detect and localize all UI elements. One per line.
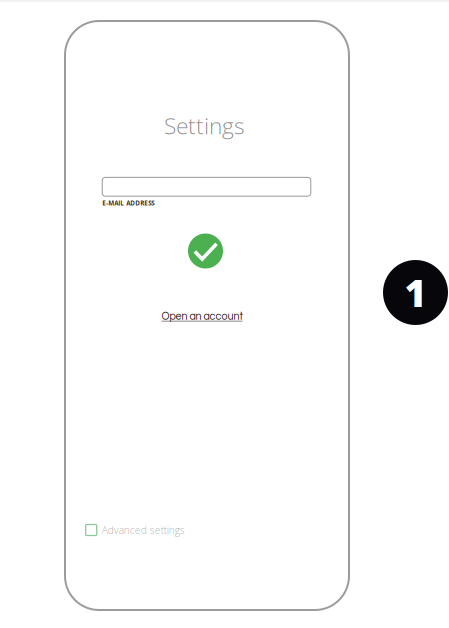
- staticText: Settings: [164, 110, 245, 141]
- button[interactable]: Advanced settings: [86, 523, 185, 537]
- staticText: 1: [404, 267, 426, 318]
- staticText: E-MAIL ADDRESS: [102, 199, 154, 207]
- button[interactable]: Open an account: [161, 311, 242, 322]
- staticText: Advanced settings: [102, 523, 185, 537]
- staticText: Open an account: [161, 311, 242, 322]
- button[interactable]: [102, 177, 311, 196]
